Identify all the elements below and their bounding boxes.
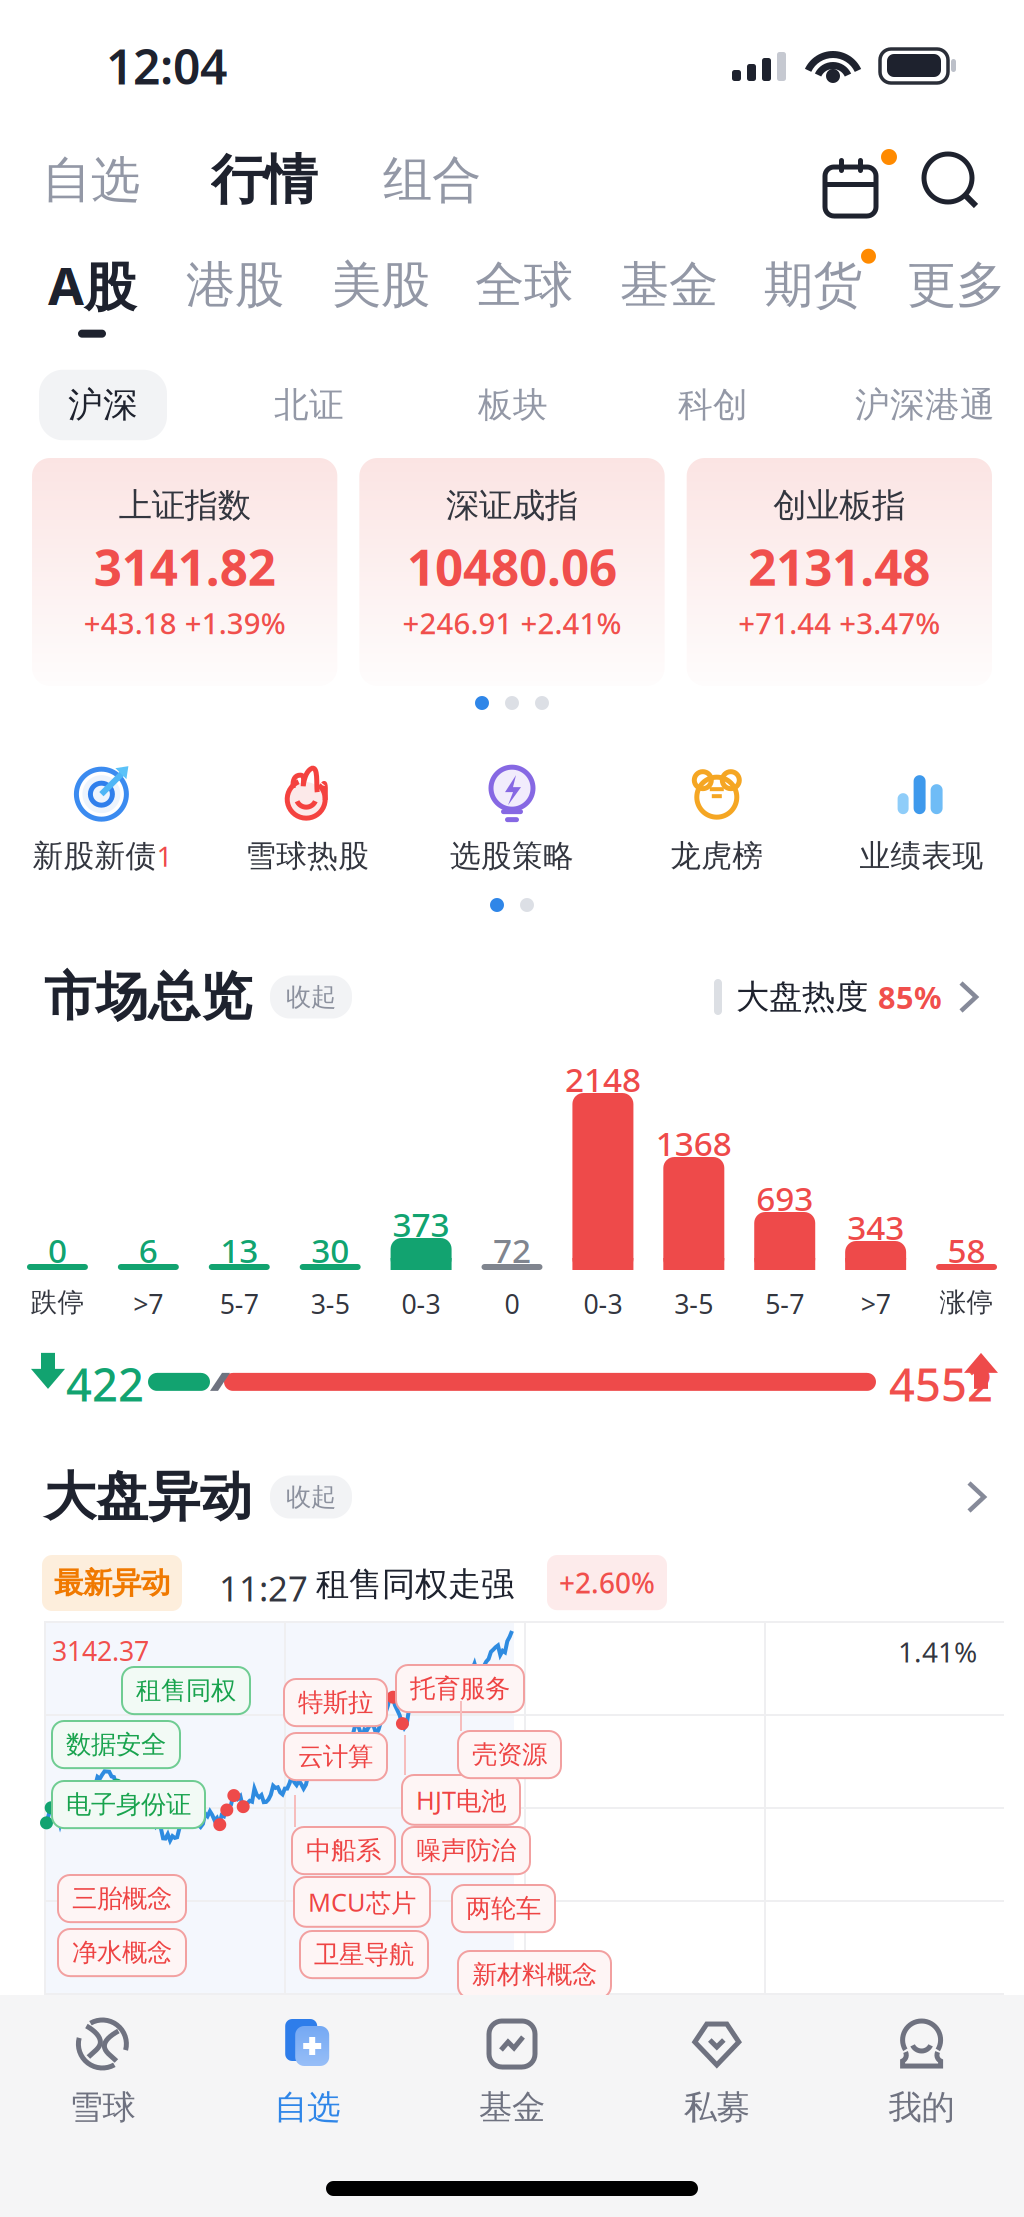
button[interactable]: 全球 — [424, 254, 624, 334]
staticText: 693 — [756, 1176, 813, 1220]
staticText: 自选 — [274, 2087, 340, 2128]
button[interactable]: 更多 — [856, 254, 1024, 334]
button[interactable]: 沪深港通 — [826, 370, 1024, 440]
button[interactable]: 我的 — [819, 2015, 1024, 2128]
staticText: 5-7 — [765, 1286, 804, 1321]
button[interactable]: 雪球 — [0, 2015, 205, 2128]
staticText: 业绩表现 — [860, 837, 984, 875]
staticText: 0-3 — [583, 1286, 622, 1321]
staticText: 收起 — [286, 1481, 336, 1512]
staticText: 深证成指 — [446, 485, 578, 526]
button[interactable]: 期货 — [713, 254, 913, 334]
staticText: 中船系 — [306, 1835, 381, 1866]
staticText: 数据安全 — [66, 1729, 166, 1760]
staticText: 托育服务 — [410, 1673, 510, 1704]
staticText: 卫星导航 — [314, 1939, 414, 1970]
button[interactable]: 创业板指 — [687, 458, 992, 686]
staticText: 10480.06 — [407, 534, 617, 599]
staticText: 沪深港通 — [855, 384, 995, 426]
button[interactable]: 科创 — [649, 370, 777, 440]
button[interactable]: 业绩表现 — [819, 765, 1024, 875]
button[interactable]: 北证 — [245, 370, 373, 440]
button[interactable]: 收起 — [270, 1475, 352, 1518]
staticText: +246.91 +2.41% — [402, 603, 621, 642]
button[interactable]: 基金 — [569, 254, 769, 334]
staticText: 租售同权走强 — [316, 1564, 514, 1605]
staticText: 特斯拉 — [298, 1687, 373, 1718]
staticText: MCU芯片 — [308, 1885, 416, 1919]
staticText: 11:27 — [219, 1565, 308, 1611]
staticText: 港股 — [186, 255, 284, 315]
button[interactable]: 行情 — [184, 140, 344, 220]
staticText: 北证 — [274, 384, 344, 426]
button[interactable]: 沪深 — [39, 370, 167, 440]
staticText: 2148 — [565, 1057, 641, 1101]
button[interactable]: 美股 — [281, 254, 481, 334]
button[interactable]: 自选 — [11, 140, 171, 220]
staticText: 私募 — [684, 2087, 750, 2128]
staticText: 上证指数 — [119, 485, 251, 526]
staticText: 12:04 — [106, 34, 227, 98]
staticText: 343 — [847, 1205, 904, 1249]
staticText: 30 — [311, 1228, 349, 1272]
button[interactable]: 自选 — [205, 2015, 410, 2128]
staticText: >7 — [133, 1286, 163, 1321]
staticText: 新股新债 — [32, 837, 156, 875]
staticText: 3-5 — [674, 1286, 713, 1321]
staticText: 58 — [947, 1228, 985, 1272]
button[interactable]: 收起 — [270, 975, 352, 1018]
staticText: 租售同权 — [136, 1675, 236, 1706]
staticText: 3142.37 — [52, 1633, 149, 1668]
staticText: 全球 — [475, 255, 573, 315]
staticText: 跌停 — [30, 1286, 84, 1319]
button[interactable]: More market moves — [964, 1478, 990, 1516]
staticText: 373 — [393, 1202, 450, 1246]
staticText: 自选 — [42, 150, 140, 210]
button[interactable]: 组合 — [352, 140, 512, 220]
staticText: 0 — [48, 1228, 67, 1272]
staticText: 雪球 — [69, 2087, 135, 2128]
staticText: 组合 — [383, 150, 481, 210]
button[interactable]: 龙虎榜 — [614, 765, 819, 875]
button[interactable]: A股 — [0, 254, 192, 334]
staticText: 72 — [493, 1228, 531, 1272]
button[interactable]: 上证指数 — [32, 458, 337, 686]
staticText: 期货 — [764, 255, 862, 315]
staticText: 大盘热度 — [736, 976, 868, 1017]
button[interactable]: 大盘热度 — [714, 976, 982, 1017]
staticText: +43.18 +1.39% — [84, 603, 286, 642]
staticText: +2.60% — [559, 1564, 655, 1601]
button[interactable]: 新股新债 — [0, 765, 205, 875]
staticText: >7 — [861, 1286, 891, 1321]
staticText: 噪声防治 — [416, 1835, 516, 1866]
button[interactable]: 选股策略 — [410, 765, 614, 875]
staticText: 3-5 — [311, 1286, 350, 1321]
button[interactable]: Search — [924, 154, 980, 212]
staticText: HJT电池 — [416, 1783, 506, 1817]
button[interactable]: 深证成指 — [359, 458, 665, 686]
staticText: 最新异动 — [54, 1565, 170, 1601]
staticText: 1 — [156, 837, 172, 875]
staticText: +71.44 +3.47% — [738, 603, 940, 642]
staticText: 收起 — [286, 981, 336, 1012]
staticText: 创业板指 — [773, 485, 905, 526]
staticText: 净水概念 — [72, 1937, 172, 1968]
button[interactable]: 基金 — [410, 2015, 614, 2128]
staticText: 3141.82 — [94, 534, 276, 599]
staticText: 两轮车 — [466, 1893, 541, 1924]
button[interactable]: 港股 — [135, 254, 335, 334]
staticText: 1.41% — [898, 1633, 977, 1670]
button[interactable]: 板块 — [449, 370, 577, 440]
staticText: 1368 — [656, 1121, 732, 1165]
staticText: 0-3 — [402, 1286, 441, 1321]
staticText: 6 — [139, 1228, 158, 1272]
staticText: 更多 — [907, 255, 1005, 315]
staticText: 85% — [878, 977, 942, 1017]
button[interactable]: 雪球热股 — [205, 765, 410, 875]
staticText: 雪球热股 — [245, 837, 369, 875]
button[interactable]: Calendar — [825, 158, 897, 216]
button[interactable]: 私募 — [614, 2015, 819, 2128]
staticText: 市场总览 — [44, 965, 252, 1029]
staticText: 沪深 — [68, 384, 138, 426]
staticText: 壳资源 — [472, 1739, 547, 1770]
